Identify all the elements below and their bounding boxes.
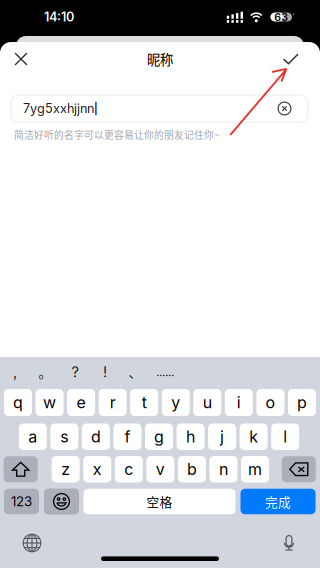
staticText: u <box>203 393 212 412</box>
staticText: r <box>110 393 116 412</box>
button[interactable]: Emoji <box>44 488 79 514</box>
staticText: 。 <box>38 362 51 382</box>
staticText: l <box>283 427 287 446</box>
staticText: ! <box>103 363 107 381</box>
button[interactable]: m <box>241 456 269 482</box>
button[interactable]: x <box>83 456 111 482</box>
staticText: 7yg5xxhjjnn <box>23 101 94 116</box>
staticText: q <box>13 393 23 412</box>
staticText: 空格 <box>146 492 172 511</box>
button[interactable]: f <box>113 423 141 450</box>
staticText: a <box>28 427 37 446</box>
button[interactable]: r <box>99 389 127 416</box>
staticText: 123 <box>11 493 32 509</box>
staticText: 完成 <box>265 492 291 511</box>
button[interactable]: ! <box>90 361 120 383</box>
button[interactable]: z <box>52 456 80 482</box>
staticText: b <box>187 460 197 479</box>
button[interactable]: n <box>209 456 237 482</box>
button[interactable]: s <box>50 423 78 450</box>
button[interactable]: 完成 <box>240 489 315 514</box>
button[interactable]: k <box>240 423 268 450</box>
button[interactable]: h <box>177 423 205 450</box>
staticText: x <box>93 460 102 479</box>
button[interactable]: d <box>82 423 110 450</box>
button[interactable]: o <box>256 389 284 416</box>
staticText: 简洁好听的名字可以更容易让你的朋友记住你~ <box>14 127 219 142</box>
staticText: , <box>13 362 17 382</box>
staticText: m <box>248 460 262 479</box>
staticText: ? <box>71 363 78 381</box>
button[interactable]: Close <box>0 42 42 76</box>
button[interactable]: 123 <box>4 489 39 514</box>
button[interactable]: ...... <box>150 361 180 383</box>
button[interactable]: Confirm <box>270 42 312 76</box>
button[interactable]: , <box>0 361 30 383</box>
staticText: e <box>77 393 86 412</box>
button[interactable]: a <box>19 423 47 450</box>
staticText: j <box>220 427 224 446</box>
button[interactable]: u <box>193 389 221 416</box>
staticText: h <box>186 427 195 446</box>
button[interactable]: 空格 <box>83 489 235 514</box>
button[interactable]: 、 <box>120 361 150 383</box>
staticText: z <box>61 460 70 479</box>
staticText: 14:10 <box>44 9 74 25</box>
button[interactable]: c <box>115 456 143 482</box>
button[interactable]: Shift <box>4 456 38 482</box>
staticText: o <box>265 393 275 412</box>
staticText: t <box>142 393 147 412</box>
staticText: w <box>43 393 56 412</box>
button[interactable]: w <box>35 389 63 416</box>
button[interactable]: Dictation <box>267 533 311 553</box>
button[interactable]: g <box>145 423 173 450</box>
staticText: v <box>156 460 165 479</box>
staticText: s <box>60 427 68 446</box>
button[interactable]: j <box>208 423 236 450</box>
staticText: 63 <box>274 10 288 23</box>
button[interactable]: t <box>130 389 158 416</box>
button[interactable]: Delete <box>282 456 316 482</box>
button[interactable]: b <box>178 456 206 482</box>
button[interactable]: ? <box>60 361 90 383</box>
staticText: c <box>124 460 133 479</box>
staticText: 、 <box>128 362 141 382</box>
button[interactable]: v <box>146 456 174 482</box>
button[interactable]: Next keyboard <box>10 533 54 553</box>
staticText: f <box>124 427 130 446</box>
button[interactable]: q <box>4 389 32 416</box>
button[interactable]: e <box>67 389 95 416</box>
staticText: n <box>219 460 228 479</box>
staticText: i <box>237 393 241 412</box>
button[interactable]: y <box>162 389 190 416</box>
staticText: 昵称 <box>147 49 173 69</box>
button[interactable]: i <box>225 389 253 416</box>
button[interactable]: p <box>288 389 316 416</box>
button[interactable]: l <box>271 423 299 450</box>
staticText: k <box>249 427 258 446</box>
staticText: ...... <box>156 365 174 379</box>
staticText: y <box>171 393 180 412</box>
staticText: p <box>297 393 307 412</box>
button[interactable]: 。 <box>30 361 60 383</box>
staticText: d <box>91 427 101 446</box>
staticText: g <box>154 427 164 446</box>
